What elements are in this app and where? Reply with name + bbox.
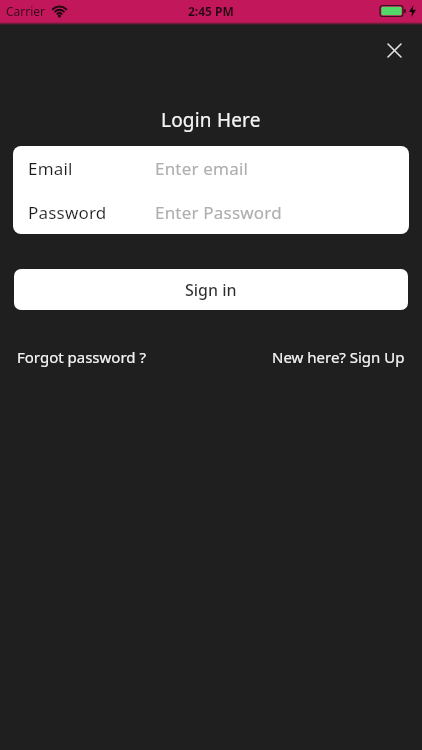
button[interactable]: Forgot password ? bbox=[17, 347, 146, 367]
staticText: Password bbox=[28, 201, 107, 224]
staticText: 2:45 PM bbox=[188, 3, 234, 19]
staticText: Enter email bbox=[155, 157, 249, 180]
button[interactable]: Email bbox=[13, 146, 409, 190]
staticText: Login Here bbox=[161, 107, 261, 133]
staticText: Email bbox=[28, 157, 73, 180]
staticText: Sign in bbox=[185, 279, 237, 301]
staticText: Enter Password bbox=[155, 201, 282, 224]
button[interactable] bbox=[374, 30, 414, 70]
button[interactable]: Password bbox=[13, 190, 409, 234]
button[interactable]: Sign in bbox=[14, 269, 408, 310]
button[interactable]: New here? Sign Up bbox=[272, 347, 405, 367]
staticText: Carrier bbox=[6, 3, 46, 19]
